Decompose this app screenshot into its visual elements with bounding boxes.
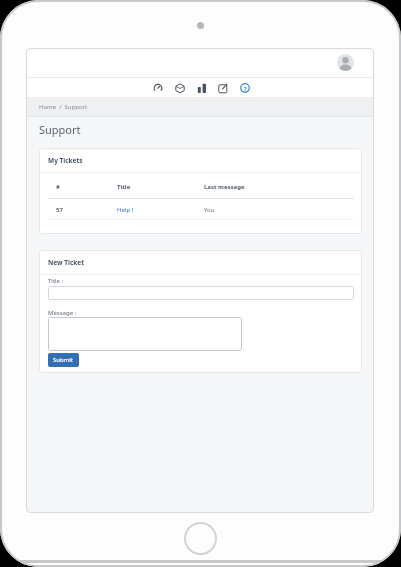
button[interactable]: [214, 79, 232, 97]
button[interactable]: [48, 286, 354, 300]
button[interactable]: [48, 317, 242, 351]
staticText: My Tickets: [48, 156, 83, 165]
button[interactable]: [337, 54, 354, 71]
button[interactable]: [193, 79, 211, 97]
staticText: You: [204, 206, 215, 214]
button[interactable]: [149, 79, 167, 97]
staticText: New Ticket: [48, 258, 85, 267]
staticText: 57: [56, 206, 63, 214]
staticText: Home / Support: [39, 103, 88, 111]
button[interactable]: Submit: [48, 353, 79, 367]
staticText: Support: [39, 122, 81, 137]
button[interactable]: Help !: [117, 202, 134, 218]
button[interactable]: [184, 522, 217, 555]
staticText: Title: [117, 183, 131, 191]
staticText: Last message: [204, 183, 245, 191]
button[interactable]: ?: [236, 79, 254, 97]
staticText: #: [56, 183, 60, 191]
staticText: ?: [244, 85, 247, 92]
staticText: Submit: [53, 356, 74, 364]
staticText: Title :: [48, 277, 64, 285]
staticText: Help !: [117, 206, 134, 214]
button[interactable]: Home / Support: [39, 101, 88, 113]
staticText: Message :: [48, 309, 77, 317]
button[interactable]: [171, 79, 189, 97]
